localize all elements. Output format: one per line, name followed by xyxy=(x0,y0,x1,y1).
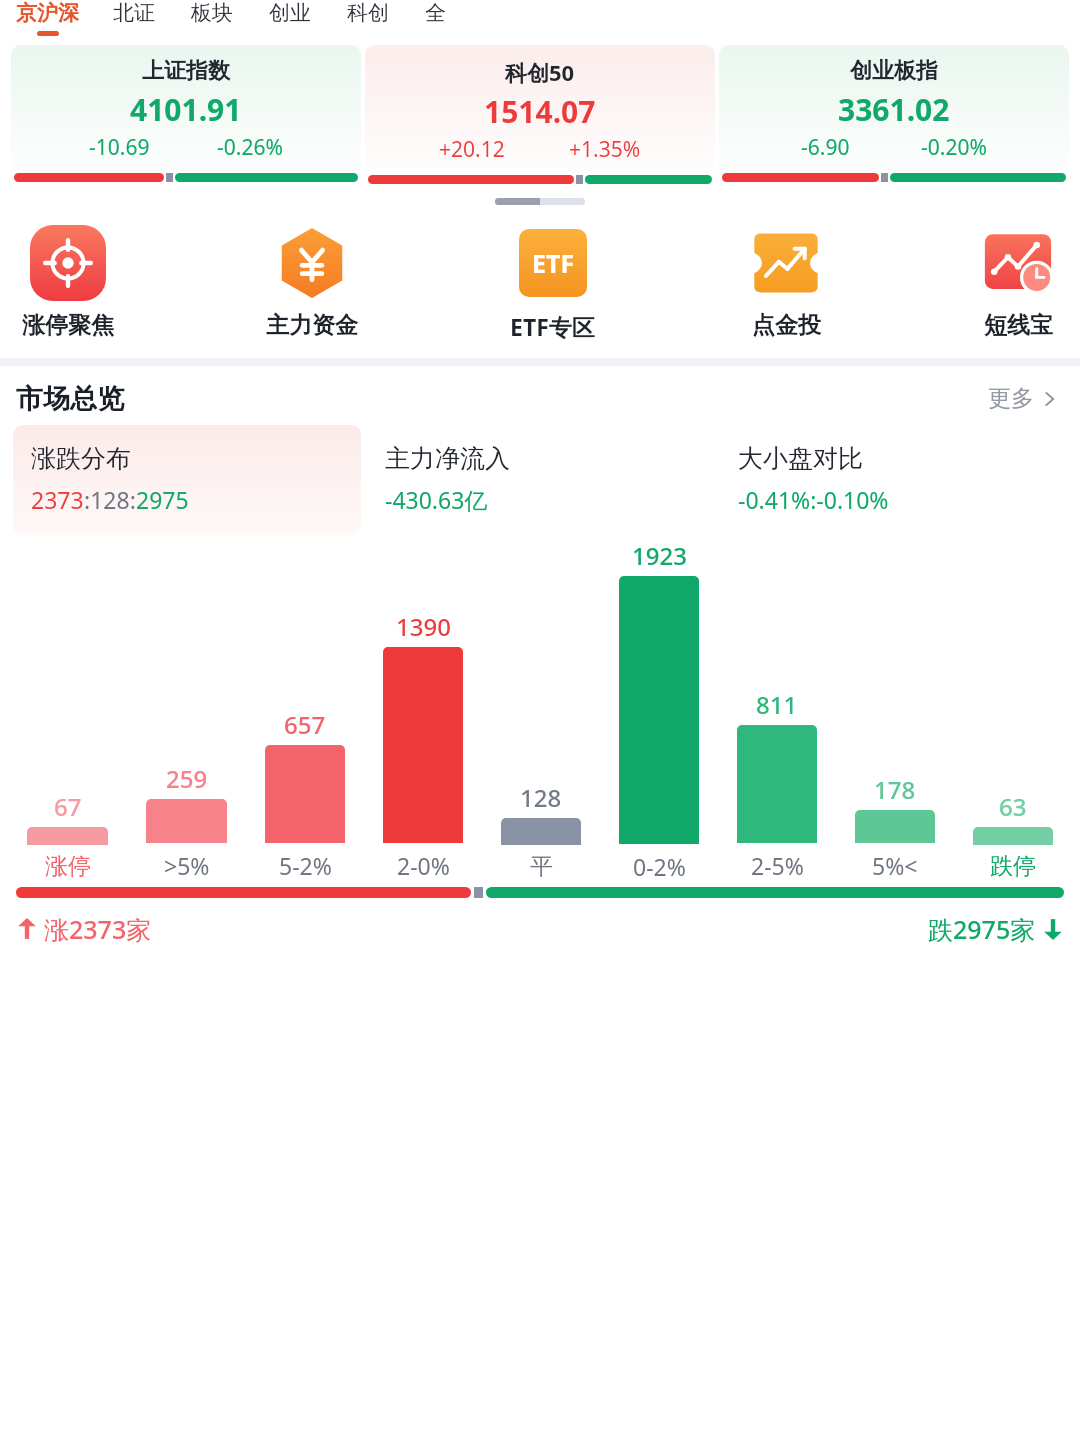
staticText: 点金投 xyxy=(752,311,821,340)
staticText: 67 xyxy=(54,790,82,823)
staticText: 259 xyxy=(166,762,208,795)
staticText: +20.12 xyxy=(439,135,505,164)
button[interactable]: 大小盘对比 xyxy=(720,425,1067,535)
staticText: -0.20% xyxy=(921,133,987,162)
staticText: ETF专区 xyxy=(510,311,595,342)
button[interactable]: 创业 xyxy=(265,0,315,31)
button[interactable]: 北证 xyxy=(109,0,159,31)
staticText: 4101.91 xyxy=(130,89,242,130)
staticText: 2-5% xyxy=(751,850,804,881)
staticText: 2975 xyxy=(136,484,189,515)
staticText: 板块 xyxy=(191,0,233,26)
button[interactable]: 短线宝 xyxy=(970,223,1066,340)
staticText: 178 xyxy=(874,773,916,806)
button[interactable]: 点金投 xyxy=(738,223,834,340)
staticText: 短线宝 xyxy=(984,311,1053,340)
staticText: 1514.07 xyxy=(484,91,596,132)
staticText: 811 xyxy=(756,688,798,721)
button[interactable]: 全 xyxy=(421,0,450,31)
staticText: 主力资金 xyxy=(266,311,358,340)
staticText: 科创 xyxy=(347,0,389,26)
staticText: -0.41%:-0.10% xyxy=(738,484,889,515)
staticText: >5% xyxy=(164,850,210,881)
staticText: 跌停 xyxy=(990,852,1036,881)
button[interactable]: 涨跌分布 xyxy=(13,425,361,535)
staticText: 657 xyxy=(284,708,326,741)
staticText: 北证 xyxy=(113,0,155,26)
staticText: 涨停聚焦 xyxy=(22,311,114,340)
button[interactable]: 创业板指 xyxy=(719,45,1069,189)
staticText: 2-0% xyxy=(397,850,450,881)
button[interactable]: 更多 xyxy=(984,380,1064,417)
staticText: 市场总览 xyxy=(16,382,124,416)
staticText: 创业 xyxy=(269,0,311,26)
button[interactable]: 上证指数 xyxy=(11,45,361,189)
staticText: 跌2975家 xyxy=(928,912,1036,946)
staticText: :128: xyxy=(84,484,136,515)
staticText: -6.90 xyxy=(801,133,850,162)
staticText: ETF xyxy=(532,246,575,280)
button[interactable]: 板块 xyxy=(187,0,237,31)
staticText: 科创50 xyxy=(505,57,575,87)
staticText: -0.26% xyxy=(217,133,283,162)
button[interactable]: 主力资金 xyxy=(258,223,366,340)
staticText: 2373 xyxy=(31,484,84,515)
staticText: 平 xyxy=(530,852,553,881)
staticText: -10.69 xyxy=(89,133,150,162)
staticText: 5%< xyxy=(872,850,918,881)
staticText: 3361.02 xyxy=(838,89,950,130)
button[interactable]: 主力净流入 xyxy=(367,425,714,535)
staticText: 更多 xyxy=(988,384,1034,413)
staticText: 主力净流入 xyxy=(385,443,510,474)
staticText: -430.63亿 xyxy=(385,484,488,515)
staticText: +1.35% xyxy=(569,135,641,164)
staticText: 1923 xyxy=(632,539,687,572)
staticText: 创业板指 xyxy=(850,57,938,85)
staticText: 涨跌分布 xyxy=(31,443,131,474)
button[interactable]: ETF专区 xyxy=(502,223,603,342)
staticText: 128 xyxy=(520,781,562,814)
button[interactable]: 科创50 xyxy=(365,45,715,191)
staticText: 5-2% xyxy=(279,850,332,881)
staticText: 涨2373家 xyxy=(44,912,152,946)
staticText: 大小盘对比 xyxy=(738,443,863,474)
staticText: 1390 xyxy=(396,610,451,643)
button[interactable]: 涨停聚焦 xyxy=(14,223,122,340)
staticText: 0-2% xyxy=(633,851,686,881)
button[interactable]: 京沪深 xyxy=(12,0,83,36)
staticText: 涨停 xyxy=(45,852,91,881)
staticText: 全 xyxy=(425,0,446,26)
staticText: 63 xyxy=(999,790,1027,823)
staticText: 京沪深 xyxy=(16,0,79,26)
button[interactable]: 科创 xyxy=(343,0,393,31)
staticText: 上证指数 xyxy=(142,57,230,85)
